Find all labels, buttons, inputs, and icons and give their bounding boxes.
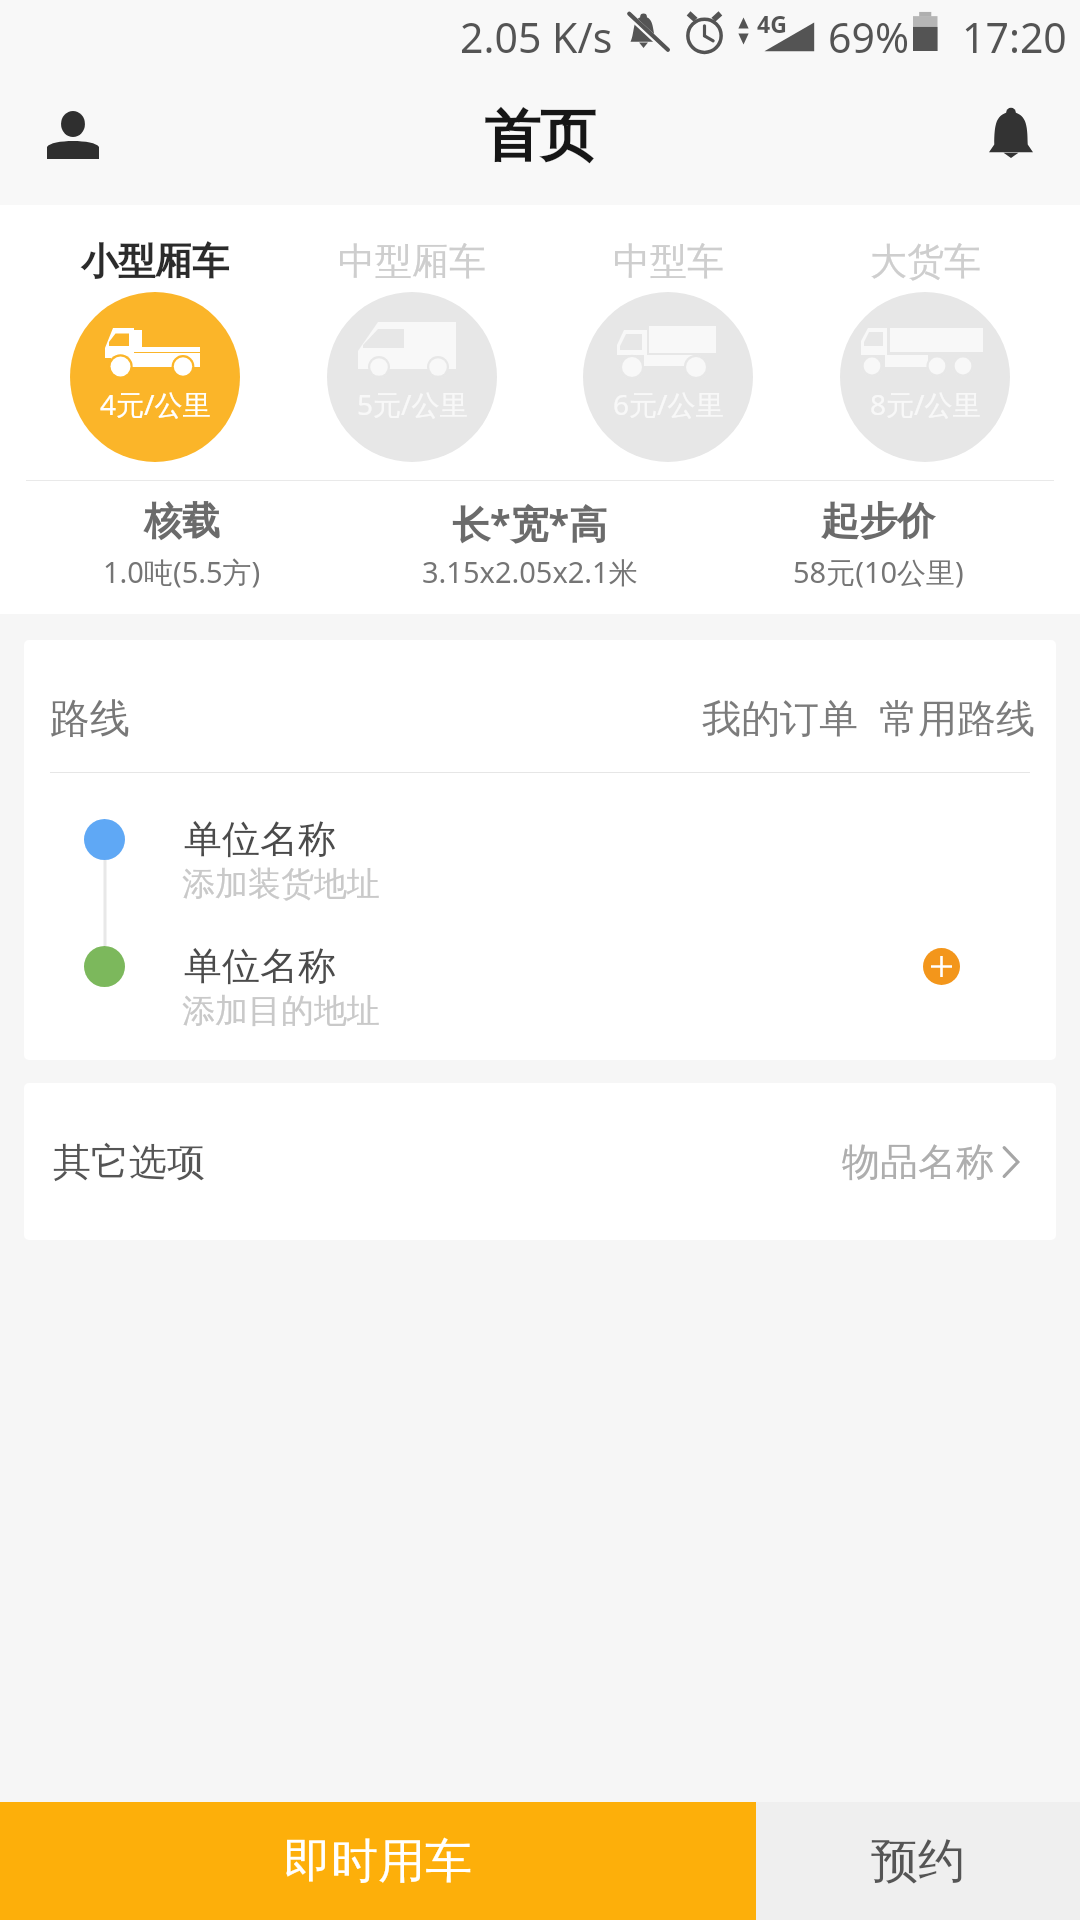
button[interactable]: 单位名称: [24, 783, 1056, 893]
button[interactable]: 常用路线: [879, 694, 1035, 743]
staticText: 其它选项: [53, 1138, 205, 1186]
staticText: 单位名称: [184, 815, 336, 863]
staticText: 2.05 K/s: [460, 9, 613, 65]
staticText: 3.15x2.05x2.1米: [422, 552, 638, 592]
button[interactable]: 单位名称: [24, 910, 1056, 1020]
button[interactable]: 即时用车: [0, 1802, 756, 1920]
staticText: 核载: [144, 497, 220, 545]
staticText: 长*宽*高: [452, 497, 608, 549]
staticText: 6元/公里: [613, 385, 724, 423]
staticText: 添加目的地址: [182, 990, 380, 1032]
button[interactable]: 中型车: [583, 205, 753, 480]
staticText: 大货车: [870, 238, 981, 285]
staticText: 首页: [484, 101, 596, 172]
staticText: 17:20: [962, 9, 1067, 65]
staticText: 4元/公里: [100, 385, 211, 423]
staticText: 单位名称: [184, 942, 336, 990]
button[interactable]: Add destination: [923, 948, 960, 985]
button[interactable]: 中型厢车: [327, 205, 497, 480]
staticText: 1.0吨(5.5方): [103, 552, 261, 592]
staticText: 69%: [828, 9, 909, 65]
button[interactable]: Profile: [25, 86, 121, 182]
staticText: 中型车: [613, 238, 724, 285]
staticText: 起步价: [821, 497, 935, 545]
staticText: 小型厢车: [81, 238, 229, 285]
staticText: 常用路线: [879, 694, 1035, 743]
button[interactable]: 小型厢车: [70, 205, 240, 480]
button[interactable]: Notifications: [963, 86, 1059, 182]
button[interactable]: 预约: [756, 1802, 1080, 1920]
staticText: 中型厢车: [338, 238, 486, 285]
button[interactable]: 大货车: [840, 205, 1010, 480]
staticText: 物品名称: [842, 1138, 994, 1186]
staticText: 路线: [50, 693, 130, 743]
button[interactable]: 其它选项: [24, 1083, 1056, 1240]
staticText: 4G: [757, 8, 787, 39]
staticText: 8元/公里: [870, 385, 981, 423]
button[interactable]: 我的订单: [702, 694, 858, 743]
staticText: 添加装货地址: [182, 863, 380, 905]
staticText: 即时用车: [284, 1832, 472, 1891]
staticText: 5元/公里: [357, 385, 468, 423]
staticText: 我的订单: [702, 694, 858, 743]
staticText: 58元(10公里): [793, 552, 964, 592]
staticText: 预约: [871, 1832, 965, 1891]
